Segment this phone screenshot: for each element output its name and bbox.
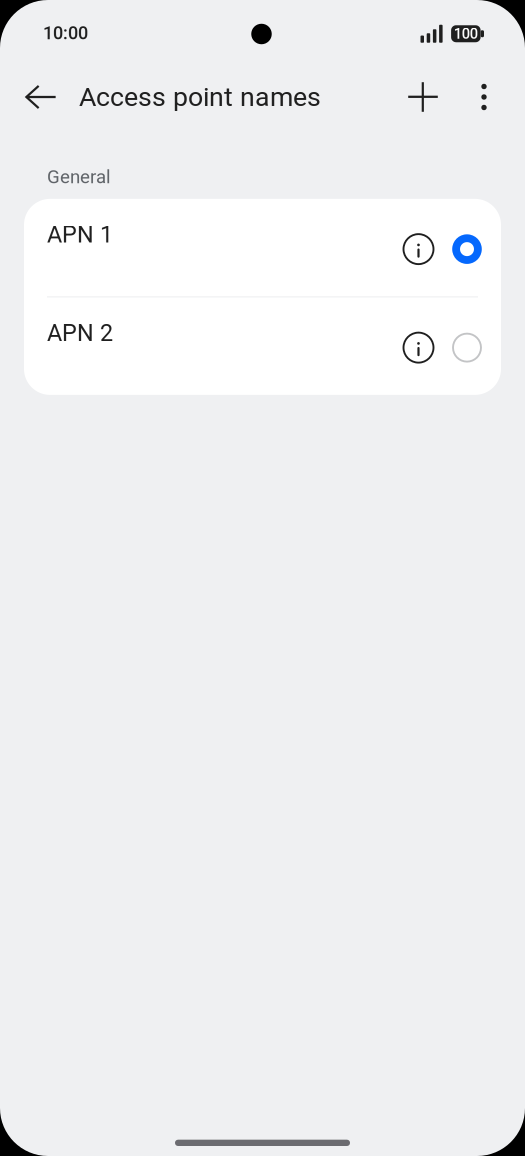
staticText: 10:00: [43, 22, 88, 44]
button[interactable]: More options: [464, 69, 504, 125]
staticText: 100: [454, 25, 478, 42]
staticText: Access point names: [79, 81, 321, 113]
button[interactable]: APN 1: [24, 199, 501, 296]
button[interactable]: Back: [15, 69, 67, 125]
button[interactable]: Add APN: [397, 69, 449, 125]
staticText: General: [47, 166, 111, 188]
staticText: APN 1: [47, 221, 113, 248]
button[interactable]: APN 2: [24, 297, 501, 395]
staticText: APN 2: [47, 319, 113, 347]
